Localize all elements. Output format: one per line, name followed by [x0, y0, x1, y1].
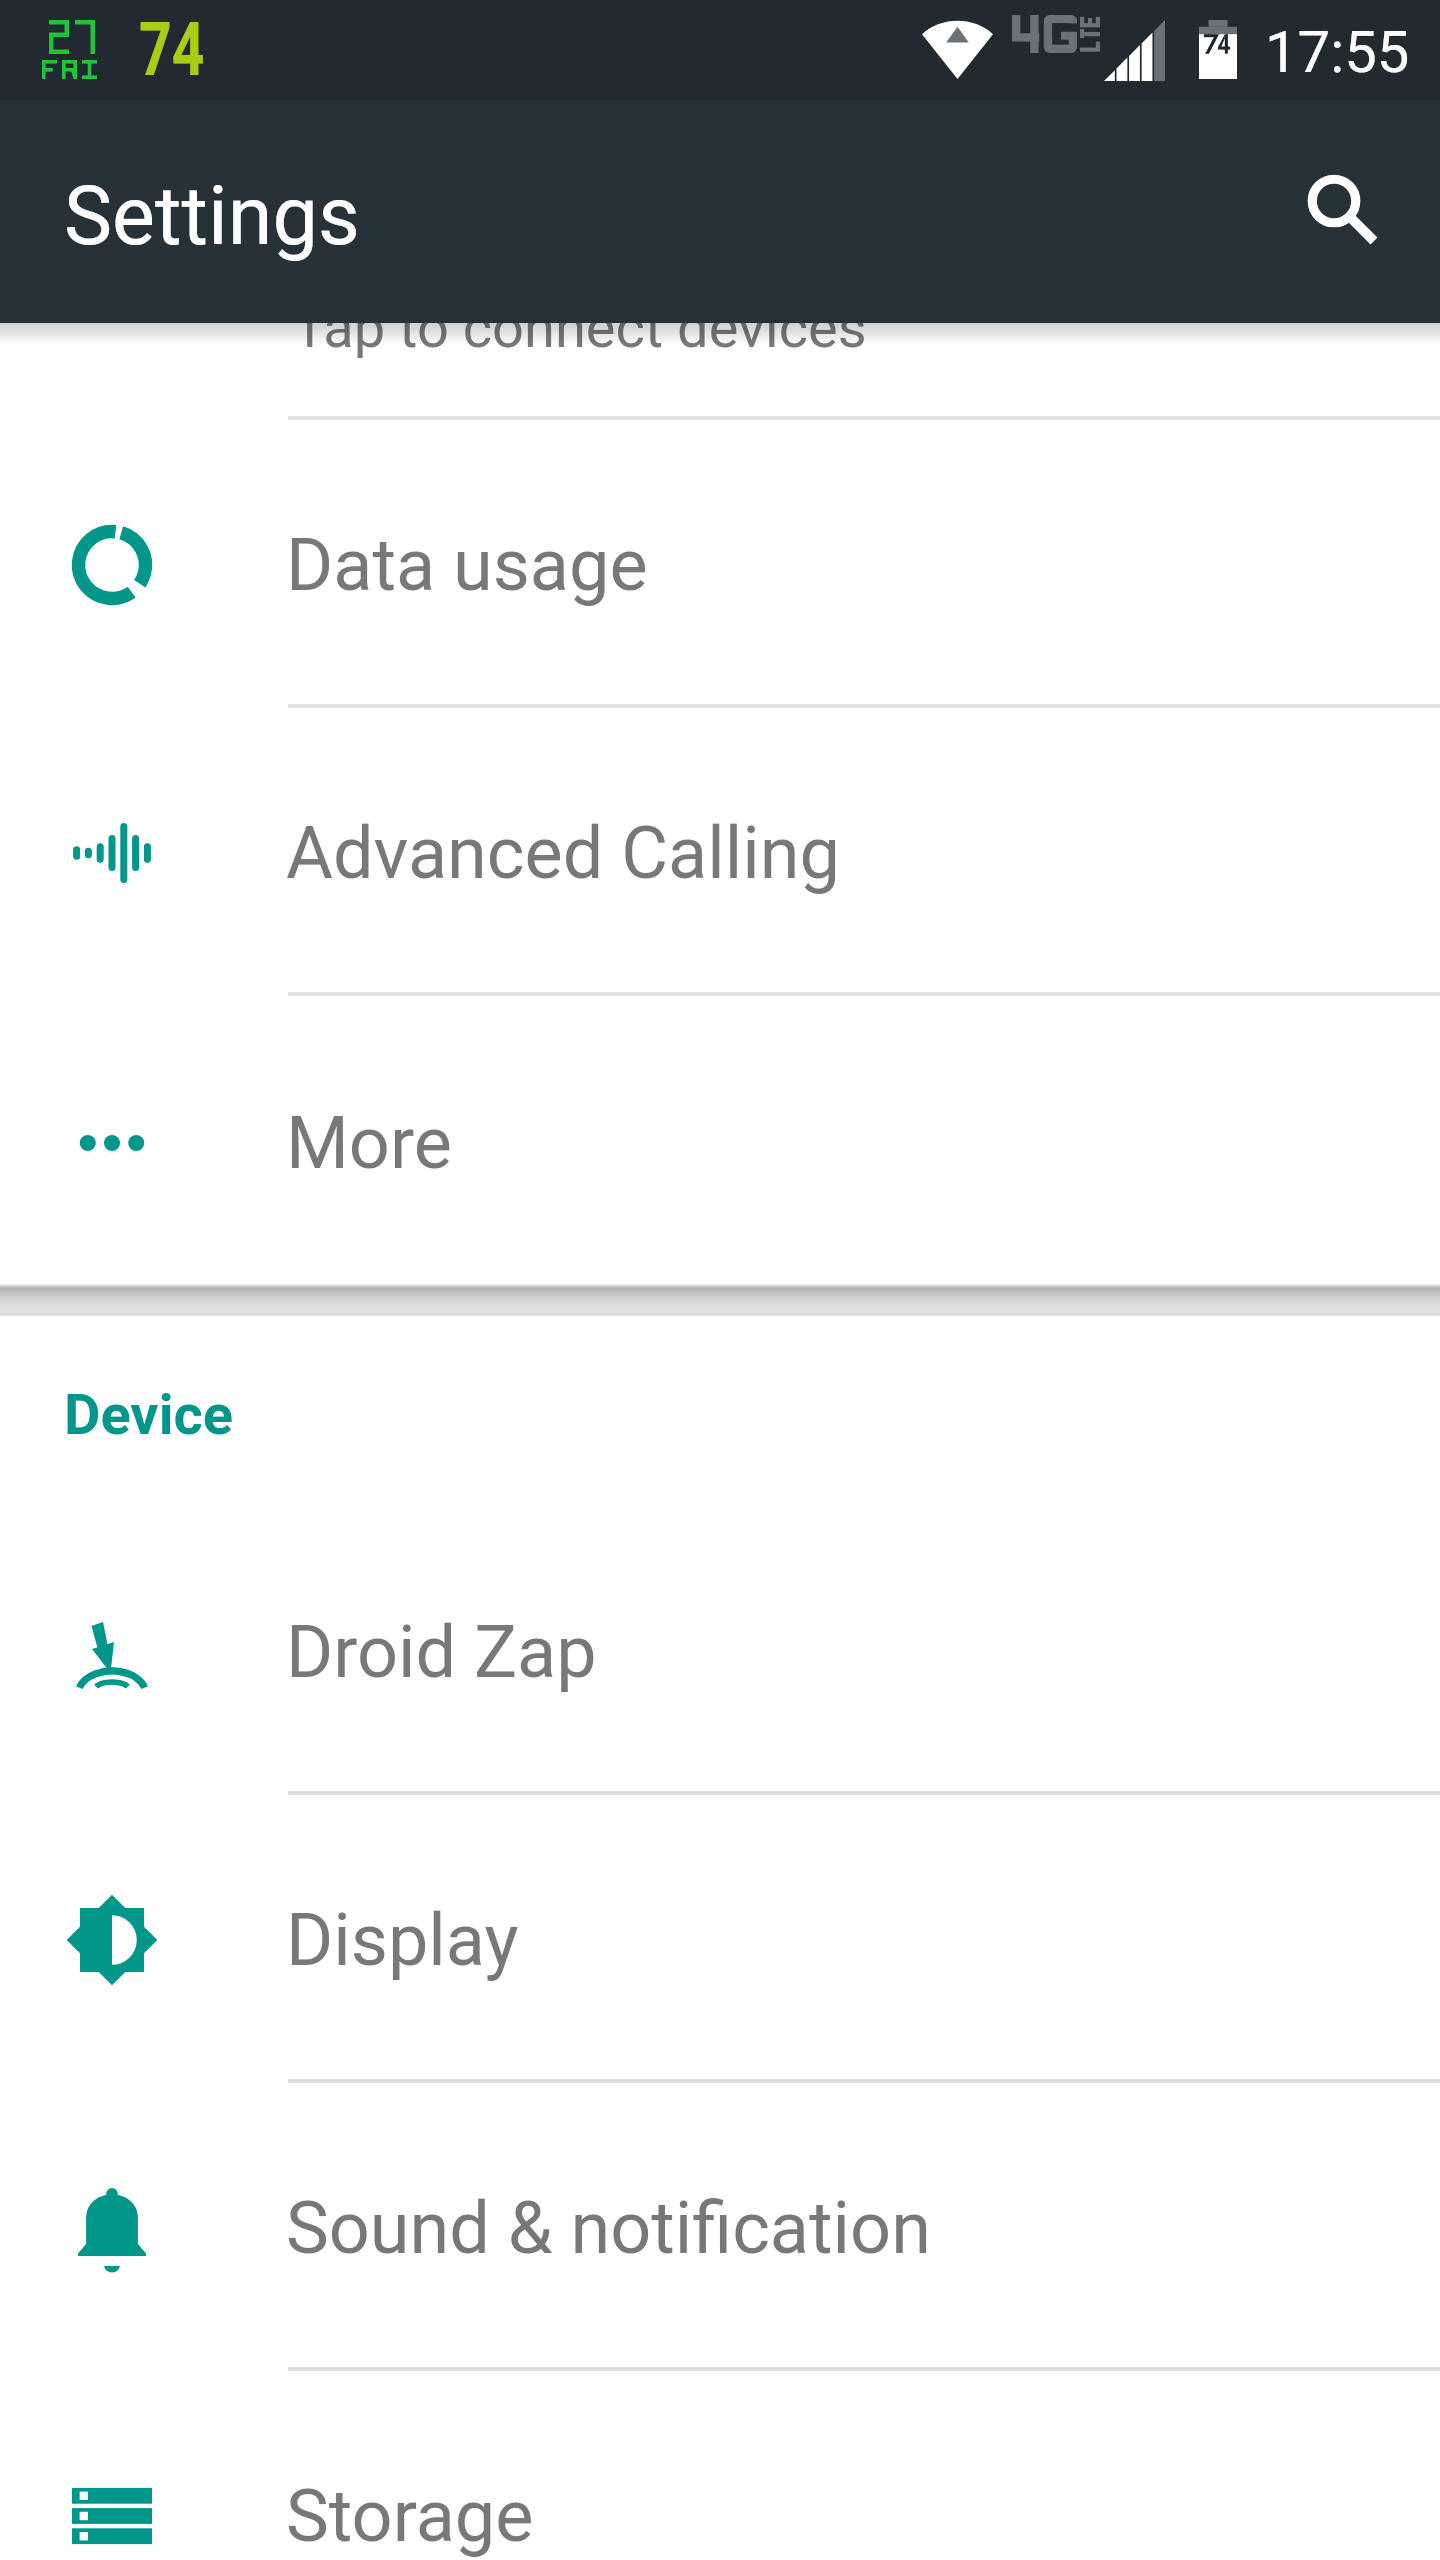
staticText: 17:55: [1265, 18, 1410, 86]
staticText: Device: [64, 1382, 234, 1448]
staticText: Advanced Calling: [286, 811, 840, 895]
button[interactable]: More: [0, 992, 1440, 1284]
staticText: Data usage: [286, 523, 648, 607]
button[interactable]: Storage: [0, 2367, 1440, 2560]
button[interactable]: Search: [1262, 140, 1406, 284]
staticText: Display: [286, 1898, 519, 1982]
staticText: Sound & notification: [286, 2186, 931, 2270]
staticText: Droid Zap: [286, 1610, 597, 1694]
staticText: Settings: [64, 169, 360, 264]
staticText: 74: [139, 6, 204, 93]
staticText: Tap to connect devices: [293, 295, 867, 361]
button[interactable]: Sound & notification: [0, 2079, 1440, 2367]
button[interactable]: Advanced Calling: [0, 704, 1440, 992]
staticText: More: [286, 1101, 452, 1185]
button[interactable]: Display: [0, 1791, 1440, 2079]
button[interactable]: Data usage: [0, 416, 1440, 704]
button[interactable]: Tap to connect devices: [0, 128, 1440, 416]
staticText: Storage: [286, 2474, 534, 2558]
button[interactable]: Droid Zap: [0, 1503, 1440, 1791]
